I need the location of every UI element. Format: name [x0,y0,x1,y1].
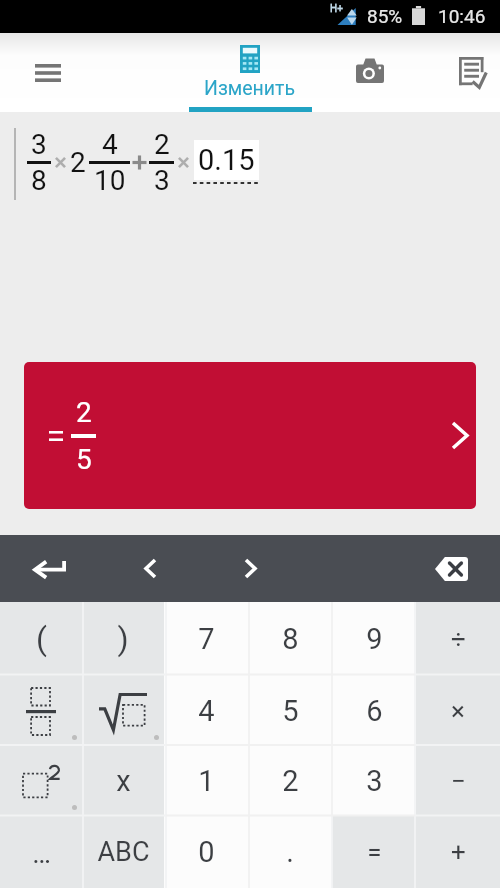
staticText: 0.15 [198,143,255,177]
staticText: ÷ [451,624,466,654]
staticText: 0 [198,835,215,869]
staticText: ( [36,620,47,658]
button[interactable]: ) [82,602,164,676]
button[interactable]: 8 [248,602,332,676]
button[interactable]: Camera [340,33,400,112]
staticText: + [451,837,466,867]
staticText: … [32,837,51,870]
staticText: 3 [154,164,170,197]
staticText: 2 [154,128,170,161]
staticText: 2 [76,396,92,429]
staticText: . [286,835,294,869]
staticText: x [116,764,131,798]
staticText: 3 [31,128,47,161]
button[interactable] [0,746,82,816]
button[interactable]: Next [218,535,282,602]
button[interactable]: 1 [164,746,248,816]
staticText: 1 [198,764,215,798]
button[interactable]: Menu [0,33,95,112]
button[interactable]: + [416,816,500,888]
button[interactable]: 5 [248,676,332,746]
staticText: 3 [366,764,383,798]
staticText: = [367,837,382,867]
staticText: 10 [94,164,126,197]
button[interactable]: 7 [164,602,248,676]
staticText: 5 [282,694,299,728]
button[interactable]: 4 [164,676,248,746]
staticText: 85% [367,5,403,27]
button[interactable]: − [416,746,500,816]
button[interactable]: 6 [332,676,416,746]
button[interactable]: × [416,676,500,746]
button[interactable]: Previous [118,535,182,602]
staticText: 4 [102,128,118,161]
staticText: 4 [198,694,215,728]
button[interactable]: Enter [8,535,92,602]
staticText: 2 [70,146,86,179]
button[interactable]: ABC [82,816,164,888]
staticText: 2 [282,764,299,798]
staticText: H+ [330,3,343,15]
button[interactable]: x [82,746,164,816]
staticText: Изменить [204,77,296,100]
staticText: 7 [198,622,215,656]
button[interactable]: 0 [164,816,248,888]
button[interactable]: Изменить [160,33,340,112]
staticText: 9 [366,622,383,656]
staticText: 6 [366,694,383,728]
button[interactable]: Notebook [443,33,500,112]
button[interactable] [0,676,82,746]
button[interactable]: 2 [24,362,476,509]
staticText: − [451,766,466,796]
staticText: 10:46 [438,5,486,27]
staticText: 5 [76,443,92,476]
staticText: 8 [282,622,299,656]
staticText: × [451,696,465,726]
staticText: ABC [97,836,150,868]
button[interactable] [82,676,164,746]
staticText: ) [117,620,129,658]
button[interactable]: 3 [332,746,416,816]
button[interactable]: ( [0,602,82,676]
button[interactable]: 2 [248,746,332,816]
button[interactable]: Backspace [410,535,492,602]
button[interactable]: … [0,816,82,888]
button[interactable]: = [332,816,416,888]
button[interactable]: 9 [332,602,416,676]
staticText: 8 [31,164,47,197]
button[interactable]: ÷ [416,602,500,676]
button[interactable]: . [248,816,332,888]
